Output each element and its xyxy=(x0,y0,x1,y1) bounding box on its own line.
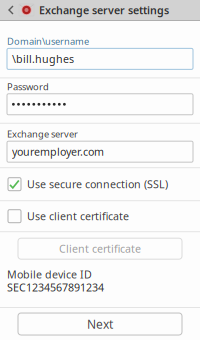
staticText: Use secure connection (SSL) xyxy=(27,177,168,191)
staticText: youremployer.com xyxy=(12,145,104,159)
staticText: Exchange server settings xyxy=(39,3,169,17)
button[interactable]: Client certificate xyxy=(18,238,182,259)
staticText: Password xyxy=(7,80,49,93)
button[interactable]: Use secure connection (SSL) xyxy=(0,168,200,200)
staticText: Use client certificate xyxy=(27,209,129,223)
button[interactable]: Use client certificate xyxy=(0,201,200,231)
staticText: SEC1234567891234 xyxy=(7,280,104,294)
staticText: Domain\username xyxy=(7,35,89,47)
button[interactable]: Next xyxy=(18,313,182,335)
staticText: Client certificate xyxy=(59,242,141,256)
staticText: Mobile device ID xyxy=(7,267,92,281)
staticText: \bill.hughes xyxy=(12,52,74,66)
staticText: Exchange server xyxy=(7,128,78,140)
staticText: Next xyxy=(87,316,113,332)
button[interactable]: Back xyxy=(3,0,19,20)
